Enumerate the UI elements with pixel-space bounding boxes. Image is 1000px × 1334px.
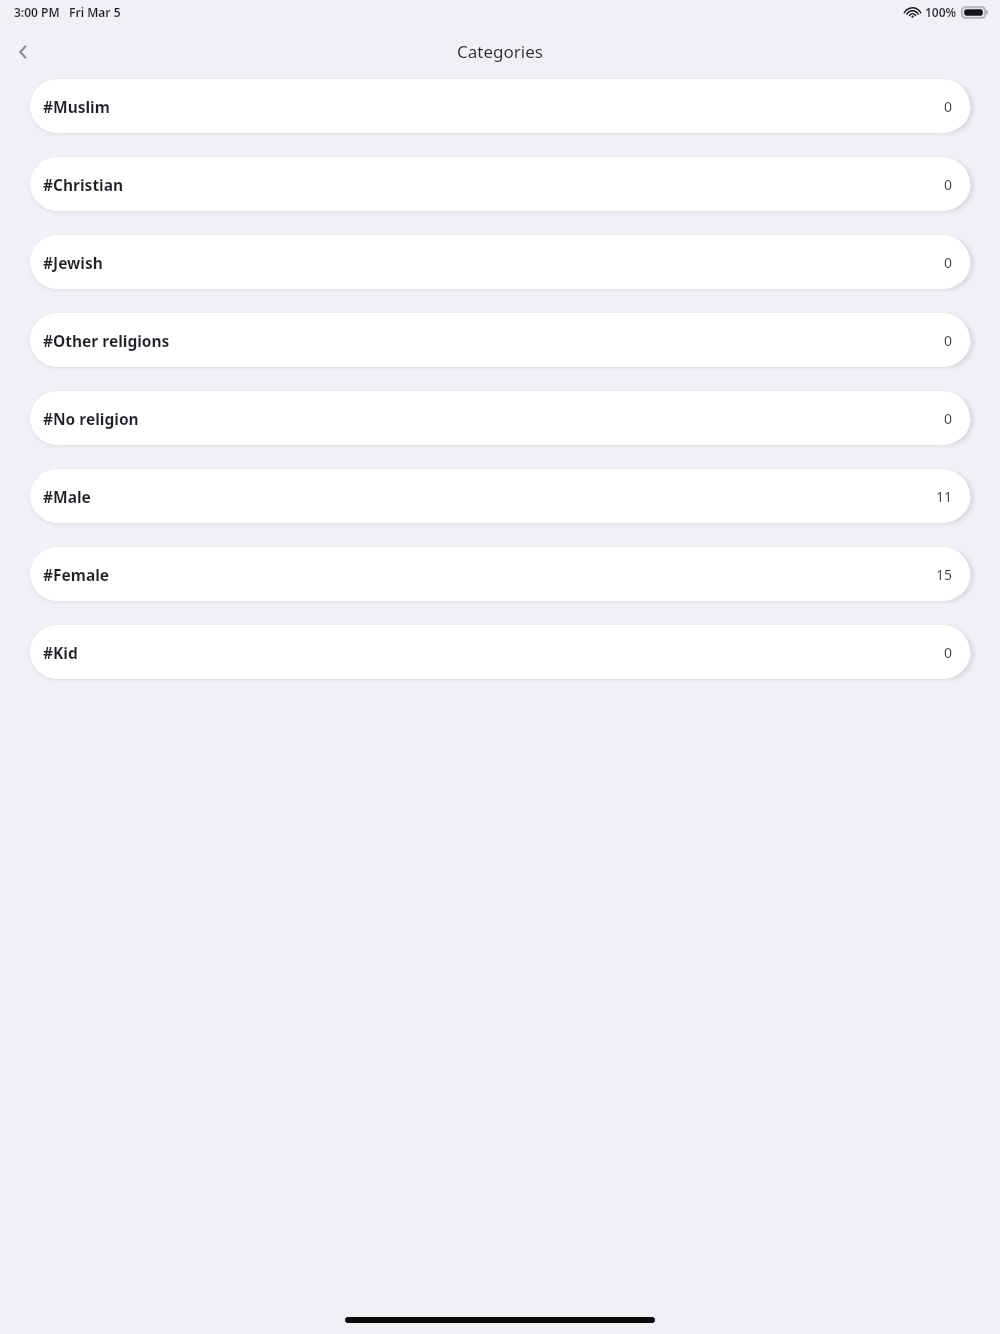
staticText: 0 — [944, 253, 953, 272]
staticText: #Christian — [43, 174, 124, 195]
staticText: 0 — [944, 409, 953, 428]
staticText: Categories — [457, 40, 543, 63]
staticText: 0 — [944, 175, 953, 194]
button[interactable]: #Kid — [30, 625, 970, 679]
staticText: #Muslim — [43, 96, 110, 117]
staticText: #Female — [43, 564, 110, 585]
staticText: 0 — [944, 331, 953, 350]
button[interactable]: #Jewish — [30, 235, 970, 289]
button[interactable]: #Other religions — [30, 313, 970, 367]
staticText: 0 — [944, 643, 953, 662]
staticText: #Male — [43, 486, 91, 507]
button[interactable]: #Muslim — [30, 79, 970, 133]
button[interactable]: #Christian — [30, 157, 970, 211]
button[interactable]: Back — [4, 33, 42, 71]
staticText: 15 — [936, 565, 953, 584]
staticText: 100% — [925, 4, 957, 20]
staticText: #No religion — [43, 408, 139, 429]
staticText: #Other religions — [43, 330, 170, 351]
button[interactable]: #Female — [30, 547, 970, 601]
staticText: Fri Mar 5 — [69, 4, 121, 20]
button[interactable]: #Male — [30, 469, 970, 523]
button[interactable]: #No religion — [30, 391, 970, 445]
staticText: #Jewish — [43, 252, 103, 273]
staticText: #Kid — [43, 642, 78, 663]
staticText: 0 — [944, 97, 953, 116]
staticText: 11 — [936, 487, 953, 506]
staticText: 3:00 PM — [14, 4, 60, 20]
